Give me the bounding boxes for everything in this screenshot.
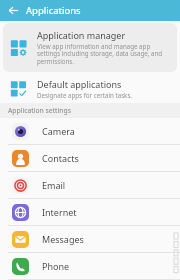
staticText: Phone bbox=[42, 260, 70, 272]
button[interactable]: Internet bbox=[0, 199, 180, 225]
staticText: Contacts bbox=[42, 152, 79, 164]
button[interactable]: Application manager bbox=[3, 23, 177, 72]
staticText: View app information and manage app sett… bbox=[37, 42, 171, 66]
button[interactable]: Messages bbox=[0, 226, 180, 252]
button[interactable]: Phone bbox=[0, 253, 180, 279]
staticText: Application manager bbox=[37, 29, 126, 41]
staticText: Default applications bbox=[37, 78, 122, 90]
staticText: Application settings bbox=[8, 106, 71, 115]
button[interactable]: Contacts bbox=[0, 145, 180, 171]
button[interactable]: Default applications bbox=[0, 74, 180, 103]
staticText: Applications bbox=[26, 4, 81, 17]
button[interactable]: Email bbox=[0, 172, 180, 198]
staticText: Email bbox=[42, 179, 66, 191]
button[interactable]: Back bbox=[0, 0, 26, 21]
button[interactable]: Camera bbox=[0, 118, 180, 144]
staticText: Designate apps for certain tasks. bbox=[37, 91, 133, 99]
staticText: Messages bbox=[42, 233, 84, 245]
staticText: Internet bbox=[42, 206, 77, 218]
staticText: Camera bbox=[42, 125, 75, 137]
